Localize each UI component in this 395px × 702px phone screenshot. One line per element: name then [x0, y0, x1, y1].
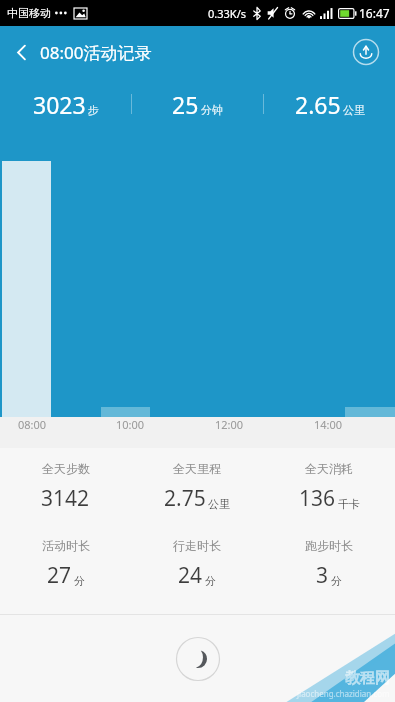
staticText: 3023: [33, 89, 86, 120]
staticText: 24: [178, 561, 203, 590]
staticText: 14:00: [314, 417, 343, 432]
staticText: 27: [47, 561, 72, 590]
staticText: 公里: [208, 497, 230, 511]
staticText: 跑步时长: [305, 538, 353, 553]
staticText: 教程网: [345, 669, 390, 688]
button[interactable]: 活动时长: [0, 538, 131, 590]
staticText: 全天里程: [173, 461, 221, 476]
button[interactable]: 25: [132, 89, 263, 120]
staticText: 10:00: [116, 417, 145, 432]
staticText: 2.75: [164, 484, 206, 513]
button[interactable]: 全天里程: [131, 461, 263, 513]
button[interactable]: 2.65: [264, 89, 395, 120]
staticText: 12:00: [215, 417, 244, 432]
staticText: 16:47: [359, 5, 390, 21]
staticText: 0.33K/s: [208, 6, 246, 21]
staticText: 公里: [343, 103, 365, 117]
staticText: 08:00活动记录: [40, 41, 152, 64]
staticText: 08:00: [18, 417, 47, 432]
staticText: 全天步数: [42, 461, 90, 476]
button[interactable]: 跑步时长: [263, 538, 395, 590]
button[interactable]: 行走时长: [131, 538, 263, 590]
staticText: 步: [88, 103, 99, 117]
staticText: 中国移动: [7, 6, 51, 20]
staticText: 分: [74, 574, 85, 588]
staticText: 25: [172, 89, 199, 120]
staticText: 136: [299, 484, 336, 513]
staticText: 分钟: [201, 103, 223, 117]
staticText: 分: [331, 574, 342, 588]
button[interactable]: Sleep: [174, 635, 222, 683]
staticText: 行走时长: [173, 538, 221, 553]
staticText: 活动时长: [42, 538, 90, 553]
staticText: 3142: [41, 484, 90, 513]
staticText: 分: [205, 574, 216, 588]
staticText: 2.65: [295, 89, 341, 120]
button[interactable]: Share: [349, 35, 383, 69]
button[interactable]: 全天步数: [0, 461, 131, 513]
button[interactable]: 全天消耗: [263, 461, 395, 513]
staticText: 千卡: [338, 497, 360, 511]
staticText: 3: [316, 561, 329, 590]
button[interactable]: Back: [0, 31, 42, 73]
button[interactable]: 3023: [0, 89, 131, 120]
staticText: 全天消耗: [305, 461, 353, 476]
staticText: jiaocheng.chazidian.com: [297, 688, 390, 699]
